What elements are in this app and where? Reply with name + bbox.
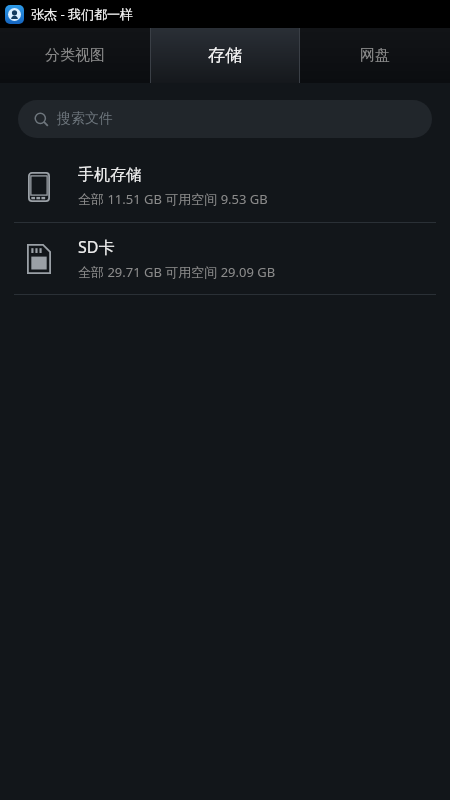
- button[interactable]: 手机存储: [0, 151, 450, 222]
- button[interactable]: SD卡: [0, 223, 450, 294]
- staticText: 搜索文件: [57, 110, 113, 128]
- staticText: 网盘: [360, 46, 390, 65]
- staticText: SD卡: [78, 236, 115, 258]
- button[interactable]: 网盘: [300, 28, 450, 83]
- staticText: 分类视图: [45, 46, 105, 65]
- staticText: 手机存储: [78, 165, 142, 185]
- staticText: 全部 29.71 GB 可用空间 29.09 GB: [78, 263, 276, 281]
- staticText: 张杰 - 我们都一样: [31, 5, 133, 23]
- staticText: 存储: [208, 45, 242, 66]
- button[interactable]: 搜索文件: [18, 100, 432, 138]
- button[interactable]: 分类视图: [0, 28, 150, 83]
- button[interactable]: 存储: [150, 28, 300, 83]
- staticText: 全部 11.51 GB 可用空间 9.53 GB: [78, 190, 268, 208]
